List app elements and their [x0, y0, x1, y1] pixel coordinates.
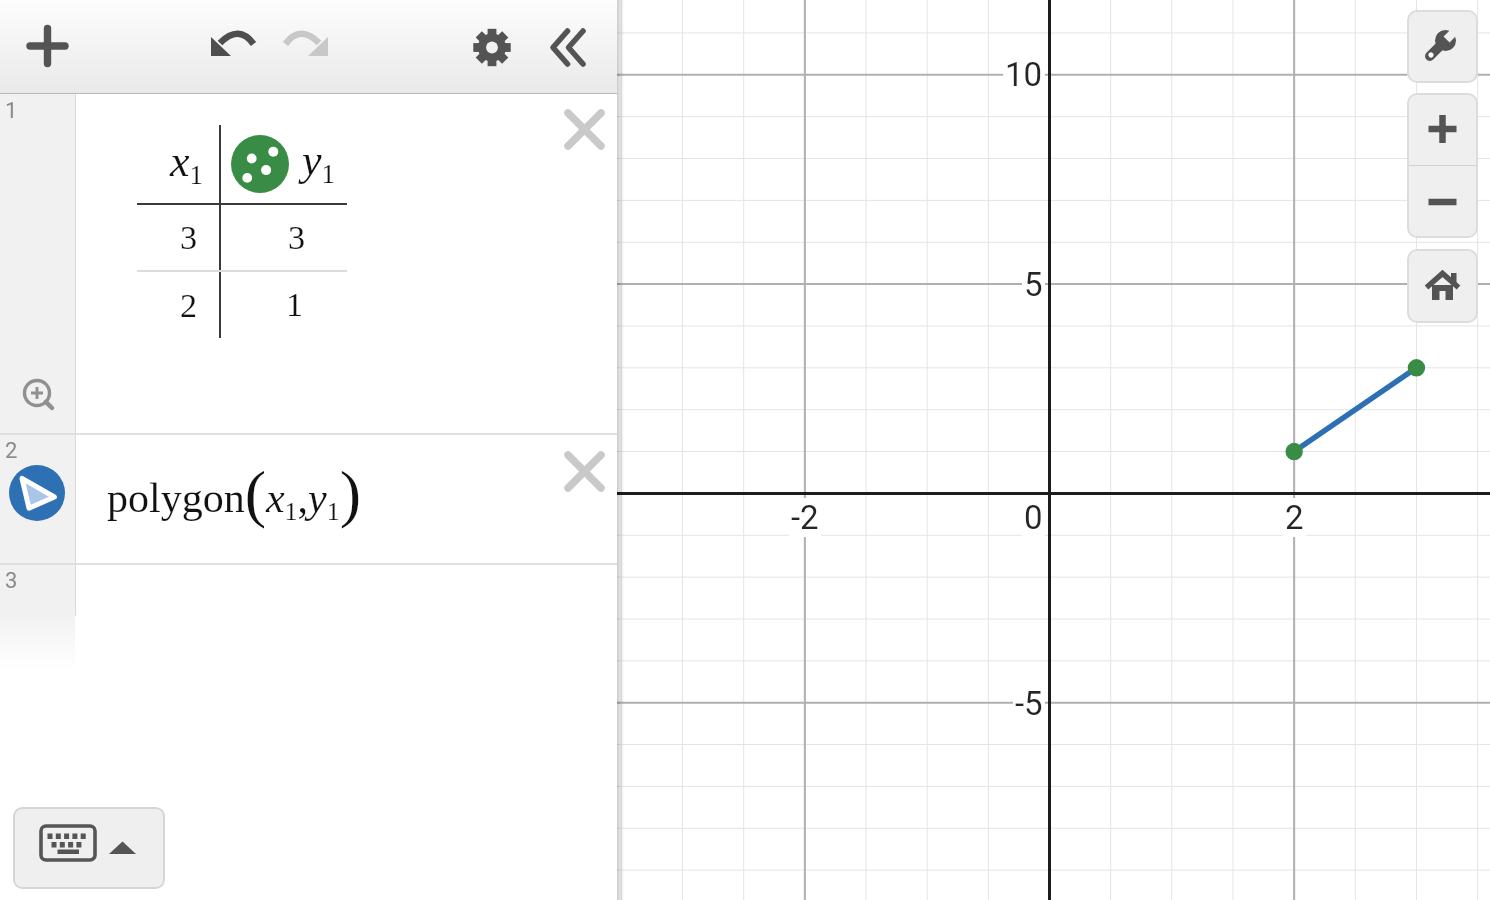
button[interactable] — [556, 101, 613, 158]
button[interactable] — [542, 18, 594, 76]
button[interactable] — [556, 443, 613, 500]
staticText: x1 — [170, 137, 204, 190]
staticText: 3 — [288, 219, 305, 257]
staticText: -2 — [791, 498, 819, 537]
staticText: 1 — [286, 286, 303, 324]
button[interactable] — [229, 133, 291, 195]
button[interactable] — [8, 464, 66, 522]
staticText: 5 — [1024, 265, 1043, 304]
button[interactable] — [464, 19, 520, 75]
button[interactable] — [13, 807, 165, 889]
staticText: 2 — [180, 287, 197, 325]
staticText: 3 — [5, 568, 18, 594]
button[interactable] — [205, 18, 259, 74]
staticText: 10 — [1005, 55, 1043, 94]
staticText: -5 — [1015, 684, 1043, 723]
staticText: 2 — [1285, 498, 1304, 537]
button[interactable] — [1407, 93, 1478, 165]
button[interactable] — [20, 18, 76, 76]
staticText: 1 — [5, 98, 18, 124]
staticText: polygon(x1,y1) — [107, 458, 362, 529]
button[interactable] — [1407, 10, 1478, 83]
button[interactable] — [1407, 249, 1478, 323]
staticText: y1 — [302, 136, 336, 189]
button[interactable] — [18, 375, 58, 415]
staticText: 3 — [180, 219, 197, 257]
button[interactable] — [1407, 166, 1478, 238]
staticText: 2 — [5, 438, 18, 464]
staticText: 0 — [1024, 498, 1043, 537]
button[interactable] — [280, 18, 334, 74]
